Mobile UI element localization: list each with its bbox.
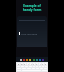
button[interactable]: u xyxy=(36,63,38,65)
button[interactable]: p xyxy=(45,63,47,65)
staticText: w xyxy=(21,63,23,65)
button[interactable]: o xyxy=(42,63,44,65)
staticText: e xyxy=(24,63,26,65)
staticText: u xyxy=(36,63,38,65)
button[interactable]: e xyxy=(24,63,26,65)
button[interactable]: w xyxy=(21,63,23,65)
staticText: Type message xyxy=(21,32,37,35)
button[interactable]: y xyxy=(33,63,35,65)
staticText: o xyxy=(42,63,44,65)
button[interactable]: t xyxy=(30,63,32,65)
button[interactable]: i xyxy=(39,63,41,65)
staticText: Example of handy form xyxy=(16,4,48,12)
staticText: p xyxy=(45,63,47,65)
staticText: q xyxy=(18,63,20,65)
button[interactable]: r xyxy=(27,63,29,65)
button[interactable]: q xyxy=(17,63,20,65)
button[interactable]: Type message xyxy=(17,16,47,47)
staticText: i xyxy=(40,63,41,65)
staticText: y xyxy=(33,63,35,65)
staticText: t xyxy=(31,63,32,65)
staticText: r xyxy=(28,63,29,65)
